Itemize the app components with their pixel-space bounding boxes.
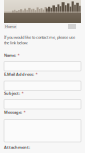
- button[interactable]: Home: [4, 24, 17, 29]
- staticText: Name:: [4, 52, 16, 58]
- staticText: *: [21, 90, 23, 96]
- staticText: Home: [5, 24, 16, 29]
- staticText: E-Mail Address:: [4, 71, 34, 77]
- staticText: *: [35, 71, 37, 77]
- staticText: *: [23, 109, 25, 115]
- staticText: Message:: [4, 109, 22, 115]
- staticText: Subject:: [4, 90, 20, 96]
- staticText: *: [17, 52, 19, 58]
- staticText: Attachment:: [4, 144, 30, 150]
- staticText: If you would like to contact me, please …: [4, 34, 75, 45]
